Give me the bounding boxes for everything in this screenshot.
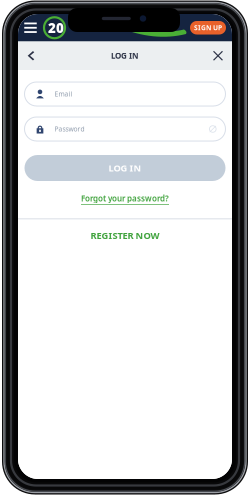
button[interactable]: Menu: [18, 14, 43, 41]
staticText: SIGN UP: [194, 23, 222, 32]
button[interactable]: Email: [24, 82, 225, 106]
staticText: Email: [54, 90, 72, 98]
button[interactable]: Home: [43, 14, 66, 41]
button[interactable]: SIGN UP: [190, 21, 226, 34]
staticText: 20: [48, 19, 64, 37]
button[interactable]: Password: [24, 117, 225, 141]
staticText: Password: [54, 125, 84, 133]
button[interactable]: REGISTER NOW: [18, 225, 232, 245]
button[interactable]: Back: [18, 41, 44, 70]
staticText: Forgot your password?: [81, 193, 169, 204]
button[interactable]: LOG IN: [24, 155, 225, 181]
staticText: REGISTER NOW: [90, 229, 159, 241]
button[interactable]: Forgot your password?: [81, 193, 169, 205]
staticText: LOG IN: [108, 162, 141, 174]
staticText: LOG IN: [111, 50, 139, 61]
button[interactable]: Close: [204, 41, 232, 70]
